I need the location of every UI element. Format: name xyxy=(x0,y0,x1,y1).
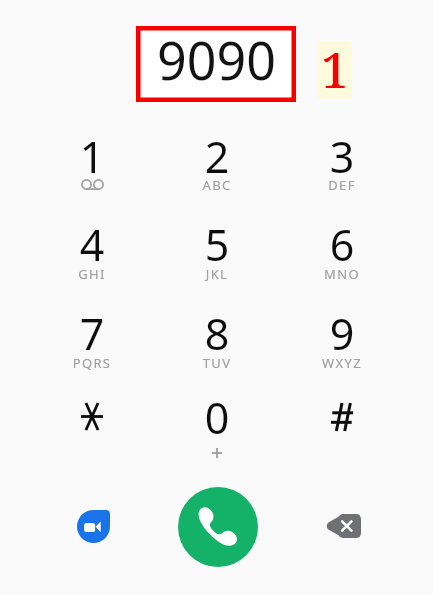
button[interactable]: 8 xyxy=(161,303,273,385)
staticText: 5 xyxy=(161,215,273,274)
button[interactable]: 0 xyxy=(161,387,273,469)
staticText: ABC xyxy=(161,176,273,194)
staticText: 9090 xyxy=(157,24,276,95)
button[interactable]: 9090 xyxy=(136,26,296,102)
button[interactable] xyxy=(286,387,398,469)
button[interactable]: 7 xyxy=(36,303,148,385)
button[interactable]: 3 xyxy=(286,126,398,208)
button[interactable]: Video call xyxy=(61,494,125,558)
staticText: 2 xyxy=(161,127,273,186)
staticText: JKL xyxy=(161,265,273,283)
staticText: MNO xyxy=(286,265,398,283)
button[interactable]: 4 xyxy=(36,214,148,296)
staticText: 4 xyxy=(36,215,148,274)
staticText: 1 xyxy=(36,127,148,186)
staticText: 9 xyxy=(286,304,398,363)
button[interactable]: Call xyxy=(178,487,258,567)
button[interactable] xyxy=(36,387,148,469)
staticText: 1 xyxy=(321,36,349,94)
staticText: GHI xyxy=(36,265,148,283)
button[interactable]: 6 xyxy=(286,214,398,296)
staticText: TUV xyxy=(161,354,273,372)
staticText: 7 xyxy=(36,304,148,363)
button[interactable]: 1 xyxy=(36,126,148,208)
button[interactable]: Backspace xyxy=(311,494,375,558)
staticText: WXYZ xyxy=(286,354,398,372)
staticText: 3 xyxy=(286,127,398,186)
staticText: 6 xyxy=(286,215,398,274)
button[interactable]: 9 xyxy=(286,303,398,385)
staticText: DEF xyxy=(286,176,398,194)
staticText: 0 xyxy=(161,388,273,447)
button[interactable]: 2 xyxy=(161,126,273,208)
staticText: PQRS xyxy=(36,354,148,372)
button[interactable]: 5 xyxy=(161,214,273,296)
staticText: 8 xyxy=(161,304,273,363)
